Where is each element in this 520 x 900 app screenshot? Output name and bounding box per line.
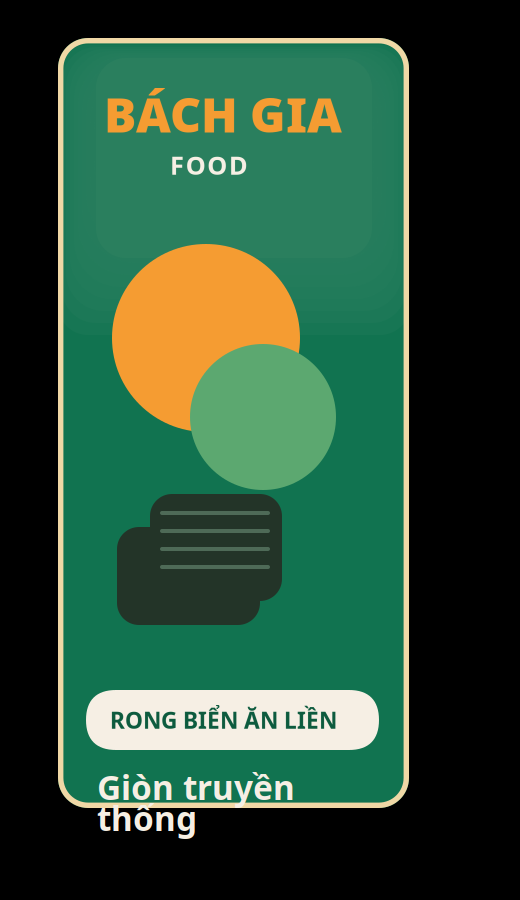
staticText: RONG BIỂN ĂN LIỀN [110,705,337,735]
staticText: BÁCH GIA [104,82,342,146]
staticText: FOOD [170,148,248,182]
button[interactable]: RONG BIỂN ĂN LIỀN [86,690,379,750]
staticText: Giòn truyền [97,765,295,809]
staticText: thống [97,796,197,840]
